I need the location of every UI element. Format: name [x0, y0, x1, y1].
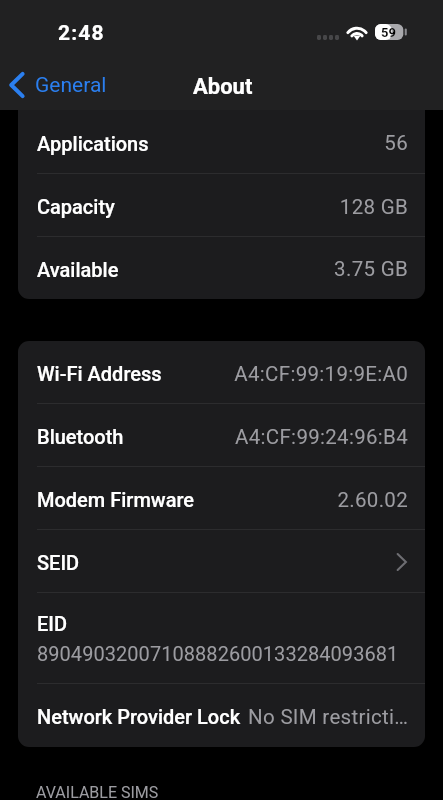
button[interactable]: Capacity: [18, 174, 425, 237]
button[interactable]: EID: [18, 593, 425, 684]
button[interactable]: Modem Firmware: [18, 467, 425, 530]
button[interactable]: SEID: [18, 530, 425, 593]
staticText: 128 GB: [339, 195, 408, 219]
staticText: EID: [37, 612, 68, 635]
staticText: 2:48: [58, 21, 105, 46]
button[interactable]: Available: [18, 237, 425, 299]
button[interactable]: Wi-Fi Address: [18, 341, 425, 404]
staticText: Capacity: [37, 195, 115, 218]
staticText: A4:CF:99:19:9E:A0: [234, 362, 408, 386]
staticText: Wi-Fi Address: [37, 362, 162, 385]
staticText: Applications: [37, 132, 149, 155]
staticText: SEID: [37, 551, 80, 574]
staticText: 2.60.02: [337, 488, 408, 512]
button[interactable]: Network Provider Lock: [18, 684, 425, 747]
staticText: 89049032007108882600133284093681: [37, 642, 399, 665]
staticText: A4:CF:99:24:96:B4: [235, 425, 408, 449]
staticText: Modem Firmware: [37, 488, 195, 511]
staticText: 56: [384, 131, 408, 155]
staticText: About: [193, 74, 253, 100]
button[interactable]: Bluetooth: [18, 404, 425, 467]
staticText: Network Provider Lock: [37, 705, 241, 728]
staticText: 59: [381, 25, 396, 40]
staticText: Bluetooth: [37, 425, 124, 448]
staticText: Available: [37, 258, 119, 281]
staticText: 3.75 GB: [334, 257, 408, 281]
staticText: General: [35, 73, 107, 98]
button[interactable]: General: [8, 72, 107, 98]
button[interactable]: Applications: [18, 110, 425, 174]
staticText: AVAILABLE SIMS: [36, 783, 159, 800]
staticText: No SIM restrictions: [247, 705, 408, 729]
